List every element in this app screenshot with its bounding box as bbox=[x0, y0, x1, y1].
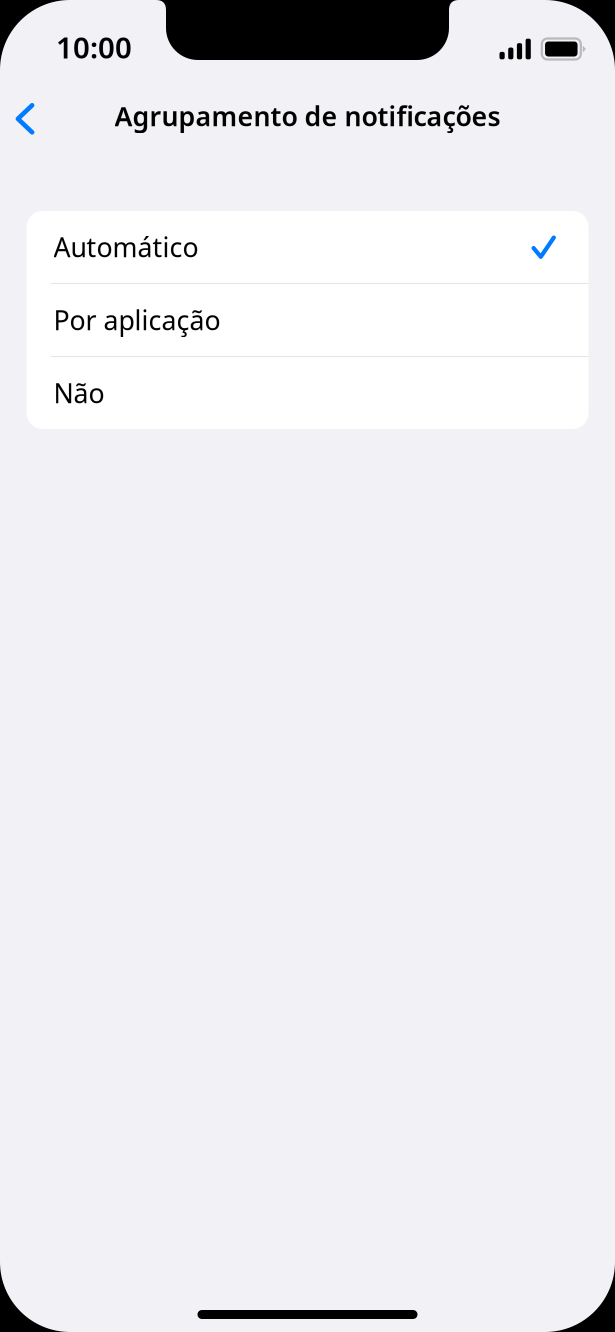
button[interactable]: Automático bbox=[26, 211, 588, 283]
staticText: Por aplicação bbox=[53, 302, 220, 338]
staticText: Não bbox=[53, 375, 104, 411]
button[interactable]: Por aplicação bbox=[26, 284, 588, 356]
staticText: Automático bbox=[53, 229, 198, 265]
button[interactable]: Back bbox=[0, 78, 50, 154]
staticText: Agrupamento de notificações bbox=[114, 98, 500, 134]
staticText: 10:00 bbox=[56, 27, 132, 66]
button[interactable]: Não bbox=[26, 357, 588, 429]
